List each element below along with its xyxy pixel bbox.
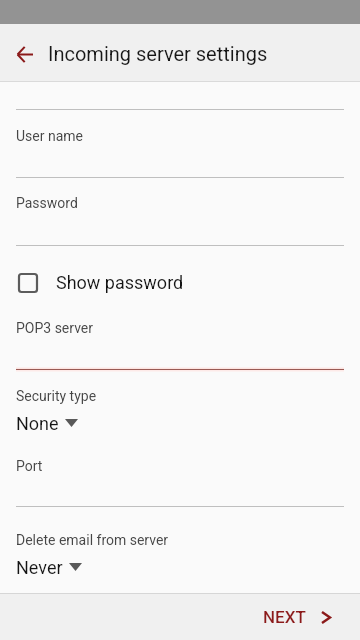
staticText: Security type xyxy=(16,388,97,404)
button[interactable] xyxy=(0,382,360,434)
staticText: Show password xyxy=(56,272,184,293)
button[interactable] xyxy=(0,526,360,578)
staticText: Never xyxy=(16,557,63,578)
button[interactable]: Navigate up xyxy=(1,31,48,78)
button[interactable] xyxy=(0,442,360,512)
staticText: Delete email from server xyxy=(16,532,169,548)
staticText: POP3 server xyxy=(16,320,94,336)
staticText: Incoming server settings xyxy=(48,42,268,65)
staticText: User name xyxy=(16,128,83,144)
staticText: NEXT xyxy=(263,607,306,627)
button[interactable] xyxy=(0,180,360,251)
staticText: Port xyxy=(16,458,43,474)
button[interactable] xyxy=(0,112,360,183)
button[interactable] xyxy=(0,304,360,375)
button[interactable]: NEXT xyxy=(243,594,360,640)
staticText: Password xyxy=(16,195,78,211)
button[interactable]: Show password xyxy=(0,265,360,300)
staticText: None xyxy=(16,413,59,434)
